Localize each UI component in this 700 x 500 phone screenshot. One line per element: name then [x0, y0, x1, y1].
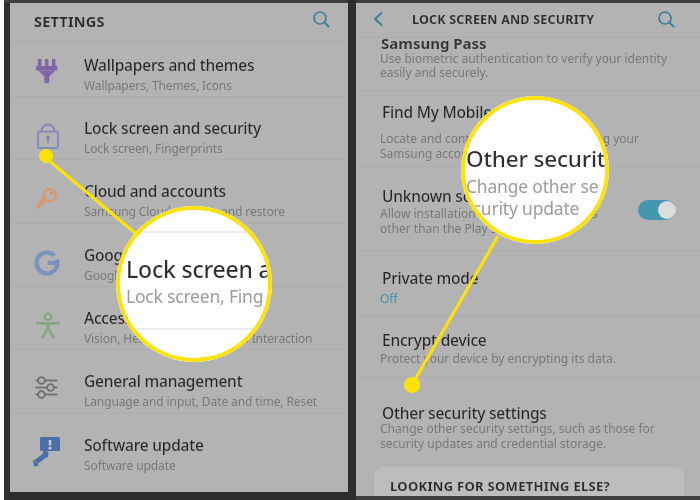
staticText: Encrypt device: [382, 329, 487, 350]
button[interactable]: [10, 350, 348, 411]
staticText: Protect your device by encrypting its da…: [380, 350, 616, 366]
staticText: Software update: [84, 434, 204, 455]
staticText: Wallpapers, Themes, Icons: [84, 77, 232, 93]
staticText: Lock screen, Fingerprints: [84, 140, 223, 156]
button[interactable]: [10, 224, 348, 285]
button[interactable]: [10, 160, 348, 221]
staticText: security updates and credential storage.: [380, 435, 607, 451]
staticText: Samsung Cloud, Backup and restore: [84, 203, 285, 219]
staticText: ecurity update: [463, 196, 580, 220]
staticText: Off: [380, 290, 398, 306]
button[interactable]: [10, 3, 348, 41]
staticText: Wallpapers and themes: [84, 54, 255, 75]
staticText: Software update: [84, 457, 176, 473]
button[interactable]: [10, 414, 348, 475]
button[interactable]: [638, 200, 676, 220]
staticText: Google: [84, 244, 136, 265]
staticText: Private mode: [382, 267, 479, 288]
staticText: Google settings: [84, 267, 171, 283]
staticText: General management: [84, 370, 243, 391]
staticText: Change other security settings, such as …: [380, 420, 655, 436]
staticText: SETTINGS: [34, 11, 105, 31]
button[interactable]: Lock screen a: [116, 206, 272, 362]
staticText: Lock screen and security: [84, 117, 262, 138]
staticText: Locate and control your lost device usin…: [380, 130, 639, 146]
staticText: Other security settings: [382, 402, 547, 423]
button[interactable]: [10, 287, 348, 348]
button[interactable]: [10, 97, 348, 158]
staticText: Find My Mobile: [382, 101, 492, 122]
staticText: Use biometric authentication to verify y…: [380, 50, 668, 66]
button[interactable]: [10, 34, 348, 95]
staticText: Change other se: [466, 174, 599, 198]
button[interactable]: [374, 467, 684, 496]
staticText: easily and securely.: [380, 64, 489, 80]
staticText: Lock screen, Fing: [126, 284, 264, 308]
staticText: Accessibility: [84, 307, 172, 328]
staticText: Samsung Pass: [381, 33, 487, 53]
staticText: Language and input, Date and time, Reset: [84, 393, 318, 409]
staticText: Lock screen a: [126, 253, 272, 284]
staticText: other than the Play Store.: [380, 220, 524, 236]
staticText: Cloud and accounts: [84, 180, 226, 201]
button[interactable]: Other securit: [461, 96, 609, 244]
staticText: Allow installation of apps from sources: [380, 205, 598, 221]
staticText: Samsung account.: [380, 145, 484, 161]
staticText: LOCK SCREEN AND SECURITY: [412, 11, 595, 28]
staticText: Vision, Hearing, Dexterity and Interacti…: [84, 330, 313, 346]
staticText: LOOKING FOR SOMETHING ELSE?: [390, 477, 611, 495]
button[interactable]: [356, 3, 700, 37]
staticText: Other securit: [466, 143, 606, 174]
staticText: Unknown sources: [382, 185, 511, 206]
